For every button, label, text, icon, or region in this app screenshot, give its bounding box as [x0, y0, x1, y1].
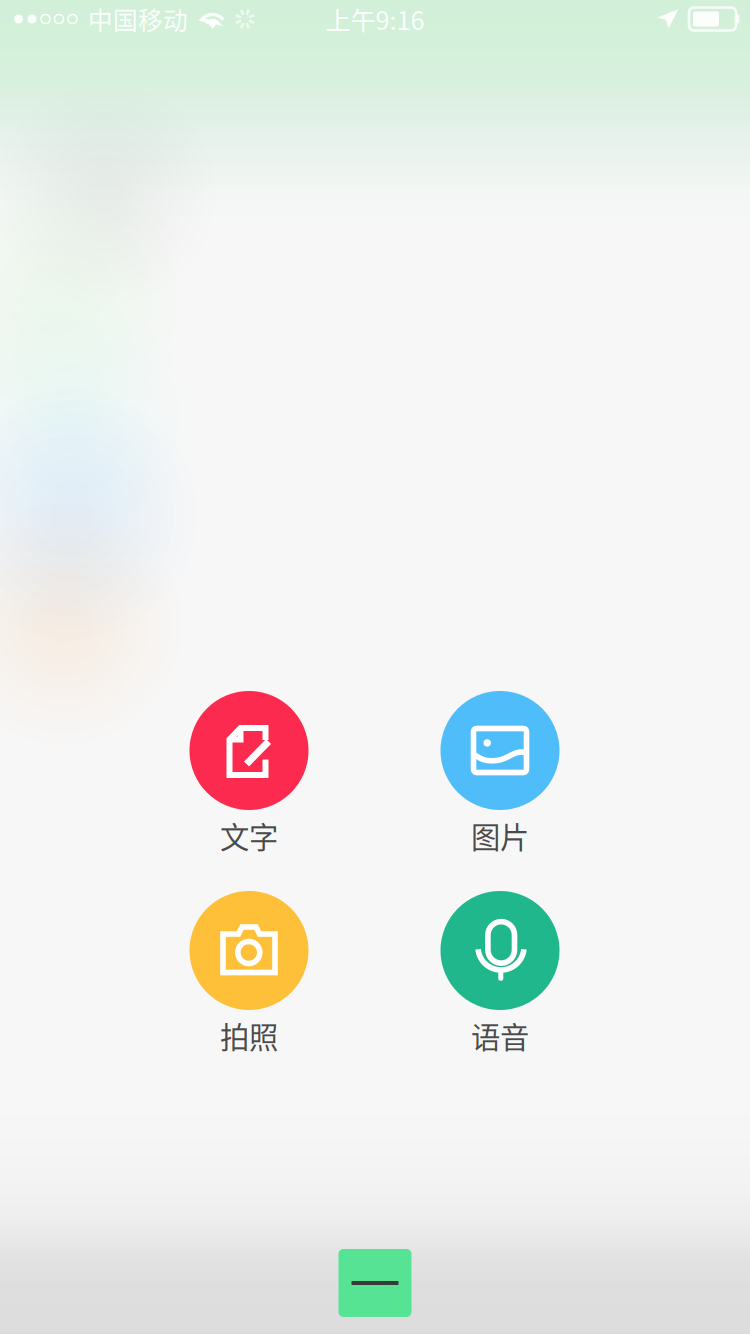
button[interactable]: Collapse panel [338, 1249, 411, 1317]
staticText: 图片 [471, 814, 529, 857]
staticText: 中国移动 [88, 1, 188, 37]
staticText: 语音 [471, 1014, 529, 1057]
staticText: 文字 [220, 814, 278, 857]
button[interactable]: 语音 [410, 891, 590, 1081]
staticText: 拍照 [220, 1014, 278, 1057]
button[interactable]: 文字 [159, 691, 339, 881]
button[interactable]: 拍照 [159, 891, 339, 1081]
button[interactable]: 图片 [410, 691, 590, 881]
staticText: 上午9:16 [325, 1, 424, 37]
